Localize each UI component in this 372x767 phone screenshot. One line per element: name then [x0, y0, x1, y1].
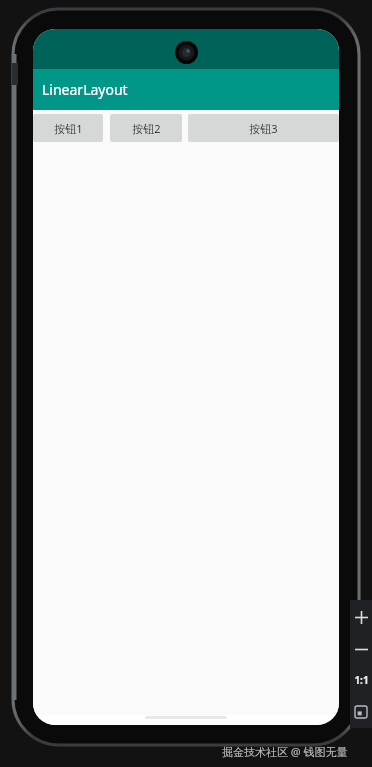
button[interactable]: Fit to screen [350, 696, 372, 728]
staticText: 按钮1 [54, 121, 83, 136]
button[interactable]: 1:1 [350, 664, 372, 696]
staticText: 掘金技术社区 @ 钱图无量 [222, 744, 348, 759]
staticText: 1:1 [354, 673, 369, 687]
button[interactable]: Zoom in [350, 600, 372, 634]
button[interactable]: 按钮2 [110, 114, 182, 142]
staticText: LinearLayout [42, 80, 128, 99]
staticText: 按钮3 [249, 121, 278, 136]
button[interactable]: Zoom out [350, 634, 372, 664]
button[interactable]: 按钮1 [33, 114, 103, 142]
button[interactable]: 按钮3 [188, 114, 339, 142]
staticText: 按钮2 [132, 121, 161, 136]
